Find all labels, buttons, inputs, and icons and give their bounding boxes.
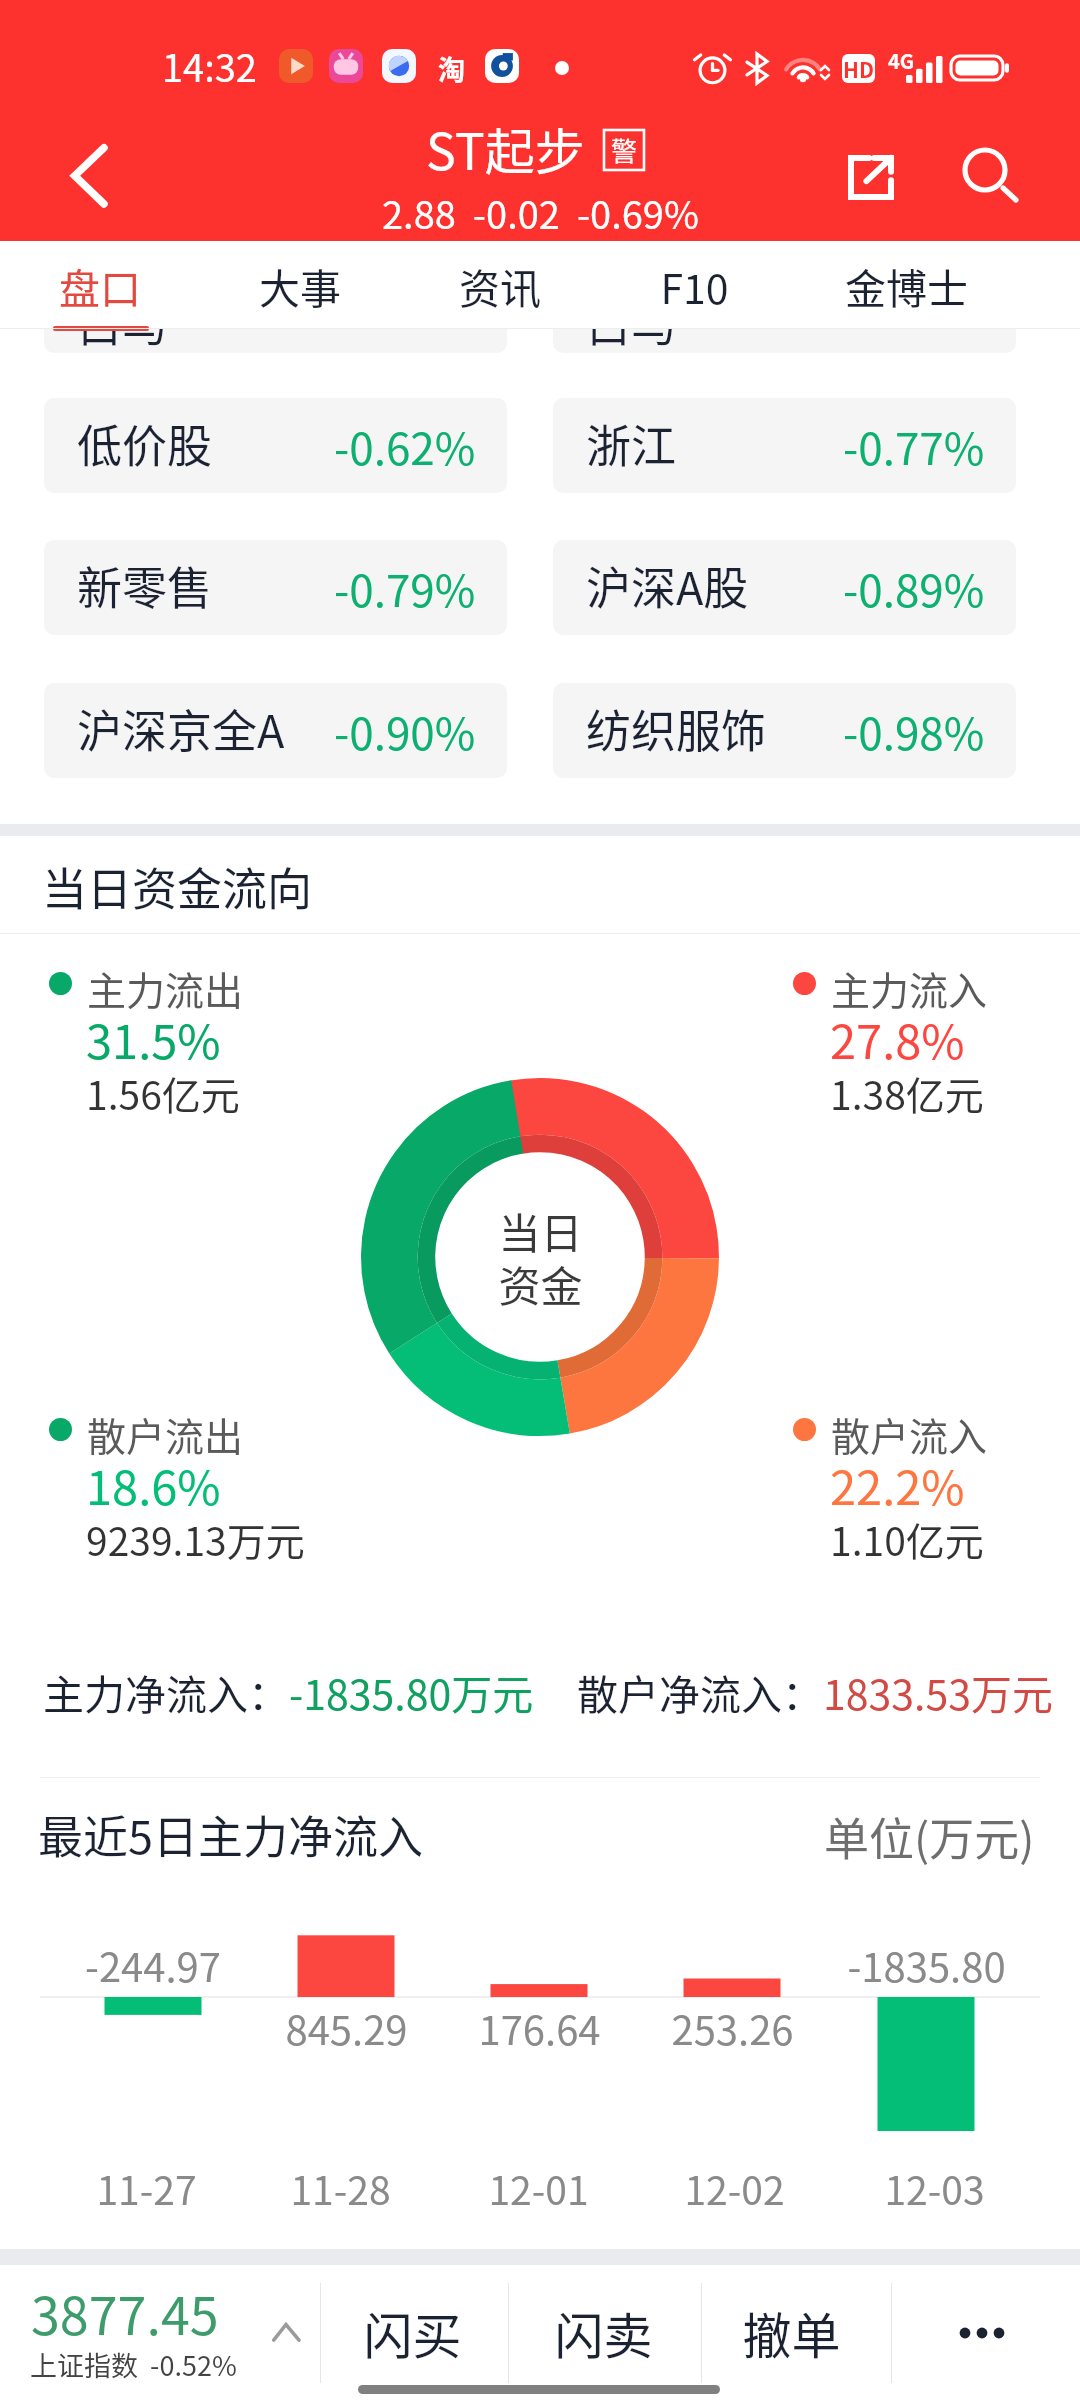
staticText: -0.79% [334, 556, 476, 620]
button[interactable]: 金博士 [806, 241, 1006, 329]
staticText: 低价股 [77, 411, 213, 476]
staticText: 当日资金流向 [42, 854, 313, 919]
button[interactable]: 资讯 [400, 241, 600, 329]
button[interactable]: 沪深京全A [44, 683, 507, 778]
staticText: 9239.13万元 [86, 1511, 305, 1567]
button[interactable]: More [892, 2265, 1072, 2400]
staticText: 资讯 [459, 256, 541, 315]
button[interactable]: F10 [594, 241, 794, 329]
staticText: -244.97 [85, 1936, 221, 1994]
staticText: 警 [611, 131, 638, 169]
staticText: -0.89% [843, 556, 985, 620]
staticText: 大事 [259, 256, 341, 315]
staticText: 主力流入 [831, 960, 988, 1016]
button[interactable]: Search [940, 126, 1030, 216]
staticText: 31.5% [86, 1004, 221, 1072]
staticText: 11-27 [96, 2160, 197, 2216]
staticText: -0.90% [334, 699, 476, 763]
staticText: 盘口 [59, 256, 141, 315]
staticText: 淘 [438, 49, 465, 83]
button[interactable]: 纺织服饰 [553, 683, 1016, 778]
button[interactable]: 闪买 [322, 2265, 502, 2400]
staticText: 上证指数 -0.52% [30, 2345, 237, 2384]
staticText: 沪深A股 [586, 553, 749, 618]
staticText: 最近5日主力净流入 [38, 1802, 423, 1867]
button[interactable]: Expand [252, 2291, 320, 2375]
button[interactable]: Share [826, 132, 916, 222]
staticText: 845.29 [285, 1999, 408, 2057]
button[interactable]: 白马 [553, 329, 1016, 353]
staticText: 闪卖 [554, 2297, 653, 2368]
staticText: 散户流出 [87, 1406, 244, 1462]
staticText: 253.26 [671, 1999, 794, 2057]
button[interactable]: 新零售 [44, 540, 507, 635]
staticText: 当日 资金 [498, 1200, 583, 1314]
button[interactable]: 浙江 [553, 398, 1016, 493]
staticText: 27.8% [830, 1004, 965, 1072]
staticText: -1835.80 [847, 1936, 1006, 1994]
staticText: 白马 [77, 329, 168, 353]
button[interactable]: 盘口 [0, 241, 200, 329]
staticText: 1.56亿元 [86, 1065, 240, 1121]
staticText: 12-01 [488, 2160, 589, 2216]
button[interactable]: 大事 [200, 241, 400, 329]
staticText: 白马 [586, 329, 677, 353]
staticText: 22.2% [830, 1450, 965, 1518]
staticText: 纺织服饰 [586, 696, 767, 761]
staticText: 散户流入 [831, 1406, 988, 1462]
staticText: 1833.53万元 [823, 1662, 1053, 1721]
staticText: 176.64 [478, 1999, 601, 2057]
staticText: 18.6% [86, 1450, 221, 1518]
staticText: 闪买 [363, 2297, 462, 2368]
button[interactable]: 闪卖 [513, 2265, 693, 2400]
staticText: ST起步 [426, 112, 585, 184]
button[interactable]: 低价股 [44, 398, 507, 493]
staticText: 主力净流入： [43, 1662, 289, 1721]
staticText: 金博士 [845, 256, 968, 315]
staticText: 2.88 -0.02 -0.69% [382, 185, 699, 240]
staticText: 1.38亿元 [830, 1065, 984, 1121]
staticText: 11-28 [290, 2160, 391, 2216]
staticText: 散户净流入： [577, 1662, 823, 1721]
button[interactable]: 撤单 [701, 2265, 881, 2400]
staticText: 1.10亿元 [830, 1511, 984, 1567]
staticText: F10 [660, 256, 729, 315]
button[interactable]: 白马 [44, 329, 507, 353]
staticText: 沪深京全A [77, 696, 285, 761]
staticText: 3877.45 [31, 2275, 219, 2350]
staticText: 主力流出 [87, 960, 244, 1016]
staticText: -0.77% [843, 414, 985, 478]
staticText: 单位(万元) [824, 1804, 1035, 1869]
staticText: -0.62% [334, 414, 476, 478]
staticText: -0.98% [843, 699, 985, 763]
button[interactable]: 沪深A股 [553, 540, 1016, 635]
staticText: 新零售 [77, 553, 213, 618]
staticText: 12-03 [884, 2160, 985, 2216]
staticText: 浙江 [586, 411, 677, 476]
staticText: HD [843, 54, 874, 83]
staticText: 12-02 [684, 2160, 785, 2216]
staticText: 撤单 [742, 2297, 841, 2368]
button[interactable]: Back [30, 128, 124, 222]
staticText: 14:32 [162, 38, 257, 93]
staticText: -1835.80万元 [289, 1662, 534, 1721]
staticText: 4G [888, 46, 915, 75]
